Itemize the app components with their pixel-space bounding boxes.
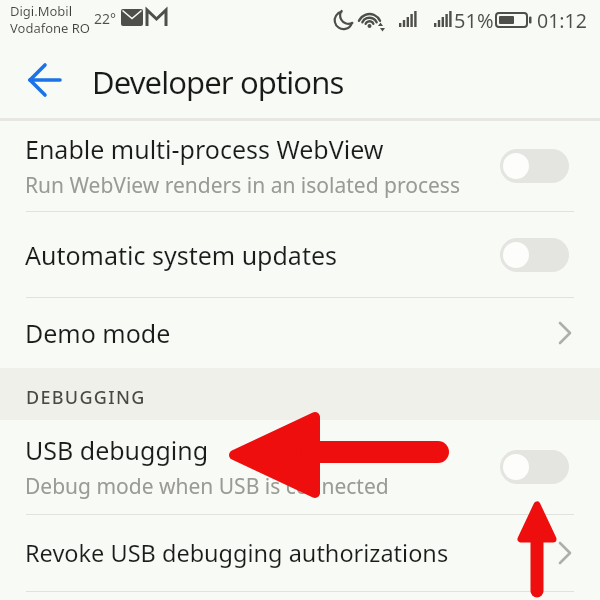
staticText: Digi.Mobil (10, 2, 73, 20)
button[interactable]: Revoke USB debugging authorizations (0, 515, 600, 591)
button[interactable] (21, 57, 69, 105)
button[interactable] (500, 238, 569, 272)
staticText: DEBUGGING (26, 385, 146, 410)
button[interactable] (500, 450, 569, 484)
staticText: Debug mode when USB is connected (25, 472, 389, 501)
staticText: Vodafone RO (10, 19, 91, 37)
button[interactable]: Automatic system updates (0, 212, 600, 297)
staticText: Developer options (92, 61, 344, 103)
staticText: Revoke USB debugging authorizations (25, 537, 449, 569)
button[interactable]: USB debugging (0, 420, 600, 514)
staticText: 01:12 (537, 7, 587, 34)
button[interactable]: Demo mode (0, 298, 600, 368)
staticText: USB debugging (25, 433, 209, 467)
staticText: Demo mode (25, 316, 171, 350)
staticText: 51% (454, 7, 494, 34)
button[interactable] (500, 149, 569, 183)
staticText: Run WebView renders in an isolated proce… (25, 171, 460, 200)
staticText: Automatic system updates (25, 238, 337, 272)
button[interactable]: Enable multi-process WebView (0, 121, 600, 211)
staticText: 22° (94, 9, 117, 28)
staticText: Enable multi-process WebView (25, 132, 384, 166)
